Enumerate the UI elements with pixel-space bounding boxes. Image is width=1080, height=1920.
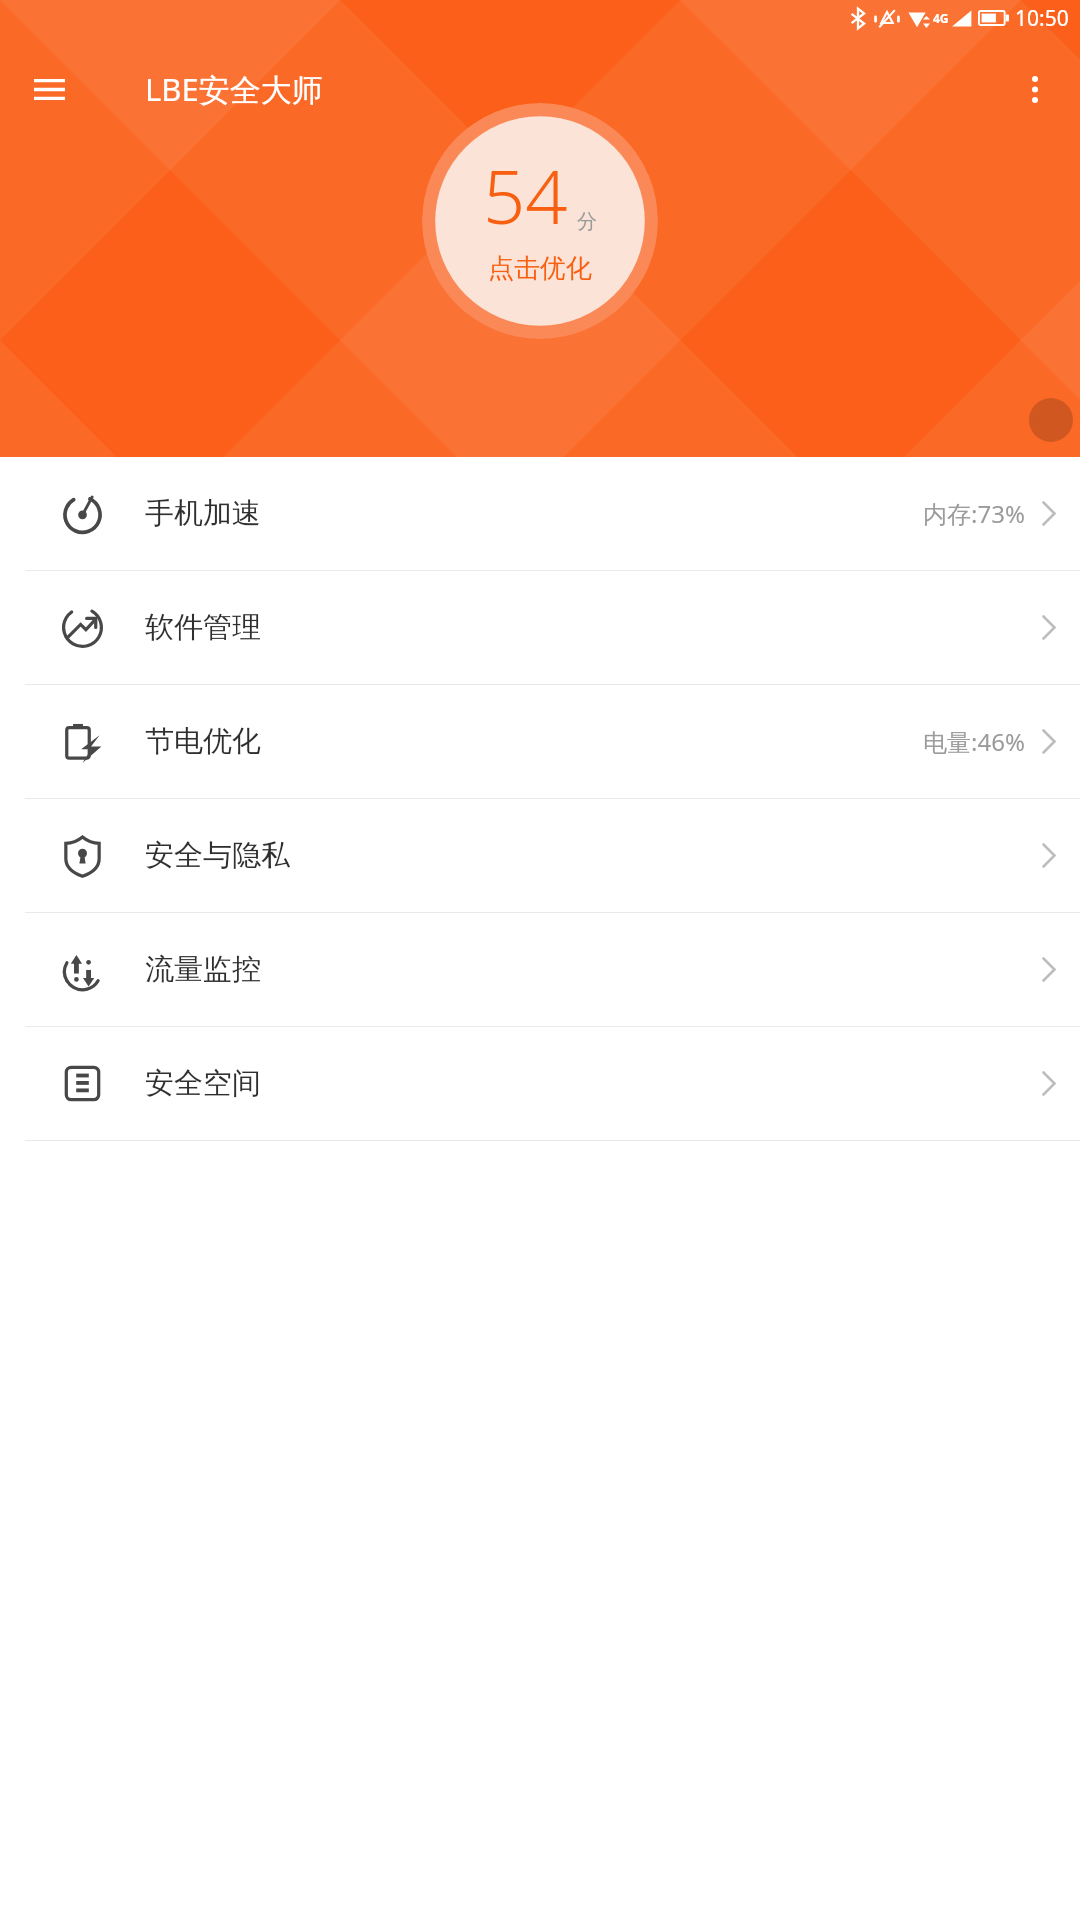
button[interactable]: 软件管理 [0, 571, 1080, 684]
staticText: 安全空间 [145, 1065, 261, 1102]
button[interactable]: 安全空间 [0, 1027, 1080, 1140]
staticText: 电量:46% [923, 725, 1025, 758]
staticText: 安全与隐私 [145, 837, 290, 874]
button[interactable]: 54 [422, 103, 658, 339]
staticText: 手机加速 [145, 495, 261, 532]
button[interactable]: Open navigation menu [24, 64, 74, 114]
staticText: 4G [933, 10, 949, 26]
staticText: 内存:73% [923, 497, 1025, 530]
button[interactable]: 流量监控 [0, 913, 1080, 1026]
button[interactable]: More options [1010, 64, 1060, 114]
staticText: 点击优化 [488, 252, 592, 285]
button[interactable]: 手机加速 [0, 457, 1080, 570]
staticText: 流量监控 [145, 951, 261, 988]
staticText: LBE安全大师 [145, 68, 323, 110]
staticText: 10:50 [1015, 4, 1069, 33]
button[interactable]: 节电优化 [0, 685, 1080, 798]
staticText: 软件管理 [145, 609, 261, 646]
staticText: 分 [577, 209, 597, 234]
button[interactable]: 安全与隐私 [0, 799, 1080, 912]
staticText: 54 [483, 145, 568, 246]
staticText: 节电优化 [145, 723, 261, 760]
